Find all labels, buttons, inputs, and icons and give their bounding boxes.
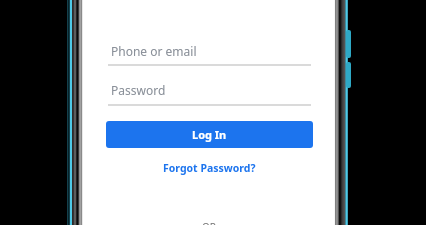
staticText: OR bbox=[202, 220, 217, 225]
staticText: Forgot Password? bbox=[163, 161, 256, 175]
staticText: Password bbox=[111, 82, 166, 98]
staticText: Phone or email bbox=[111, 43, 197, 59]
staticText: Log In bbox=[192, 127, 227, 142]
